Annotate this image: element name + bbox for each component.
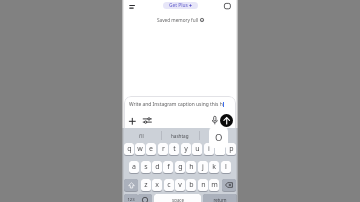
- staticText: f: [167, 162, 170, 172]
- staticText: d: [155, 162, 160, 172]
- button[interactable]: [129, 4, 137, 10]
- button[interactable]: [220, 114, 233, 127]
- button[interactable]: y: [181, 143, 191, 156]
- button[interactable]: v: [175, 179, 185, 192]
- staticText: k: [212, 162, 216, 172]
- button[interactable]: u: [192, 143, 202, 156]
- button[interactable]: d: [152, 161, 162, 174]
- staticText: Write and Instagram caption using this h: [129, 101, 223, 108]
- staticText: j: [202, 162, 204, 172]
- staticText: t: [173, 144, 176, 154]
- staticText: 123: [127, 197, 135, 202]
- button[interactable]: [212, 116, 218, 125]
- button[interactable]: w: [135, 143, 145, 156]
- staticText: Get Plus: [169, 2, 188, 9]
- staticText: x: [155, 180, 159, 190]
- button[interactable]: o: [215, 143, 225, 156]
- staticText: w: [137, 144, 143, 154]
- button[interactable]: j: [198, 161, 208, 174]
- button[interactable]: t: [169, 143, 179, 156]
- staticText: return: [213, 197, 227, 202]
- button[interactable]: a: [129, 161, 139, 174]
- staticText: z: [144, 180, 148, 190]
- button[interactable]: b: [186, 179, 196, 192]
- button[interactable]: [224, 3, 231, 9]
- button[interactable]: l: [221, 161, 231, 174]
- staticText: p: [229, 144, 234, 154]
- button[interactable]: r: [158, 143, 168, 156]
- button[interactable]: [129, 118, 136, 125]
- staticText: s: [144, 162, 148, 172]
- button[interactable]: [143, 117, 152, 124]
- staticText: v: [178, 180, 182, 190]
- staticText: O: [215, 131, 223, 144]
- button[interactable]: [124, 179, 138, 192]
- button[interactable]: z: [141, 179, 151, 192]
- staticText: c: [167, 180, 171, 190]
- staticText: u: [195, 144, 200, 154]
- button[interactable]: return: [203, 194, 237, 202]
- staticText: i'll: [139, 133, 144, 139]
- button[interactable]: hashtag: [171, 133, 189, 139]
- staticText: e: [149, 144, 153, 154]
- button[interactable]: c: [164, 179, 174, 192]
- staticText: m: [211, 180, 218, 190]
- button[interactable]: g: [175, 161, 185, 174]
- staticText: hashtag: [171, 133, 189, 139]
- staticText: q: [127, 144, 132, 154]
- button[interactable]: [124, 96, 236, 136]
- button[interactable]: [222, 179, 236, 192]
- button[interactable]: s: [141, 161, 151, 174]
- button[interactable]: [138, 194, 152, 202]
- button[interactable]: Get Plus: [163, 2, 198, 9]
- button[interactable]: h: [186, 161, 196, 174]
- staticText: h: [189, 162, 194, 172]
- staticText: space: [172, 197, 184, 202]
- staticText: y: [184, 144, 188, 154]
- staticText: l: [225, 162, 227, 172]
- staticText: i: [208, 144, 210, 154]
- staticText: Saved memory full: [157, 17, 199, 23]
- staticText: g: [178, 162, 183, 172]
- button[interactable]: i'll: [131, 129, 151, 143]
- button[interactable]: p: [226, 143, 236, 156]
- button[interactable]: n: [198, 179, 208, 192]
- button[interactable]: q: [124, 143, 134, 156]
- button[interactable]: k: [209, 161, 219, 174]
- button[interactable]: 123: [124, 194, 138, 202]
- button[interactable]: m: [209, 179, 219, 192]
- button[interactable]: space: [154, 194, 201, 202]
- staticText: a: [132, 162, 136, 172]
- staticText: r: [162, 144, 165, 154]
- button[interactable]: f: [163, 161, 173, 174]
- staticText: b: [189, 180, 194, 190]
- button[interactable]: i: [204, 143, 214, 156]
- staticText: n: [201, 180, 206, 190]
- button[interactable]: x: [152, 179, 162, 192]
- button[interactable]: e: [146, 143, 156, 156]
